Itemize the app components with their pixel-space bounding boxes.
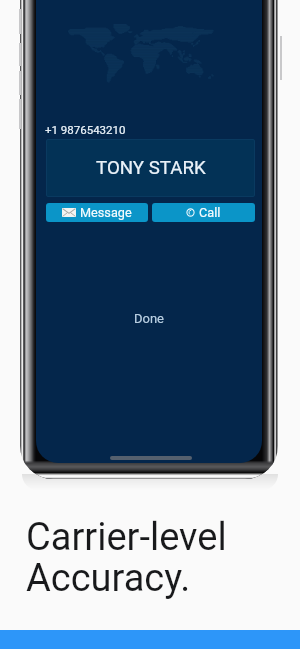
staticText: Carrier-level Accuracy. bbox=[26, 515, 227, 600]
staticText: Message bbox=[80, 205, 132, 220]
staticText: Done bbox=[134, 311, 165, 326]
button[interactable]: Message bbox=[46, 203, 148, 222]
staticText: +1 9876543210 bbox=[45, 123, 126, 136]
button[interactable]: Done bbox=[36, 308, 262, 328]
staticText: TONY STARK bbox=[96, 157, 206, 179]
button[interactable]: Call bbox=[152, 203, 255, 222]
staticText: Call bbox=[199, 205, 221, 220]
